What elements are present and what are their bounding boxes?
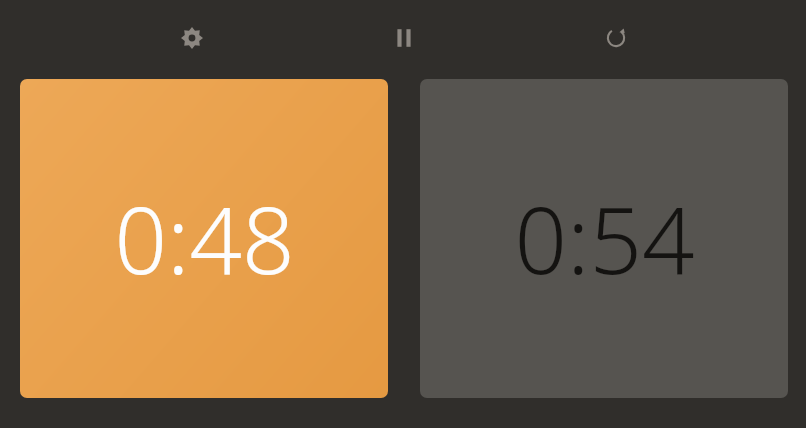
- button[interactable]: 0:48: [20, 79, 388, 398]
- staticText: 0:48: [114, 176, 295, 301]
- button[interactable]: Pause: [372, 6, 436, 70]
- button[interactable]: 0:54: [420, 79, 788, 398]
- button[interactable]: Settings: [160, 6, 224, 70]
- button[interactable]: Reset: [584, 6, 648, 70]
- staticText: 0:54: [514, 176, 695, 301]
